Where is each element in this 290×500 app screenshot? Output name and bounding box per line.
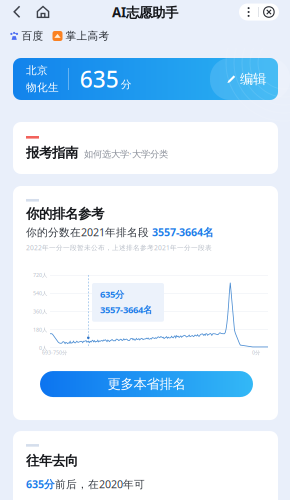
button[interactable]: 更多本省排名	[40, 371, 253, 397]
button[interactable]: Back	[6, 2, 28, 22]
staticText: 掌上高考	[65, 29, 109, 42]
staticText: 635	[80, 64, 119, 94]
staticText: 360人	[33, 308, 47, 315]
staticText: 180人	[33, 326, 47, 333]
staticText: 2022年一分一段暂未公布，上述排名参考2021年一分一段表	[26, 243, 212, 252]
staticText: 0分	[252, 349, 260, 356]
staticText: 540人	[33, 290, 47, 297]
button[interactable]: More options	[239, 3, 279, 20]
staticText: AI志愿助手	[112, 3, 178, 21]
staticText: 更多本省排名	[107, 376, 185, 392]
staticText: 3557-3664名	[100, 303, 152, 316]
staticText: 如何选大学·大学分类	[84, 147, 168, 160]
button[interactable]: 报考指南	[13, 122, 278, 174]
staticText: 报考指南	[26, 145, 78, 161]
button[interactable]: 编辑	[203, 58, 278, 100]
staticText: 693-750分	[42, 349, 67, 356]
staticText: 往年去向	[26, 453, 78, 469]
staticText: 3557-3664名	[152, 225, 214, 239]
staticText: 编辑	[240, 71, 266, 87]
staticText: 720人	[33, 271, 47, 279]
staticText: 你的排名参考	[26, 206, 104, 222]
staticText: 前后，在2020年可	[55, 477, 145, 491]
staticText: 0人	[39, 344, 47, 352]
staticText: 物化生	[26, 81, 59, 94]
staticText: 百度	[21, 29, 43, 42]
staticText: 635分	[26, 477, 55, 491]
staticText: 北京	[26, 64, 48, 77]
staticText: 分	[121, 78, 132, 91]
staticText: 你的分数在2021年排名段	[26, 225, 152, 239]
button[interactable]: Home	[32, 2, 54, 22]
staticText: 635分	[100, 288, 124, 300]
